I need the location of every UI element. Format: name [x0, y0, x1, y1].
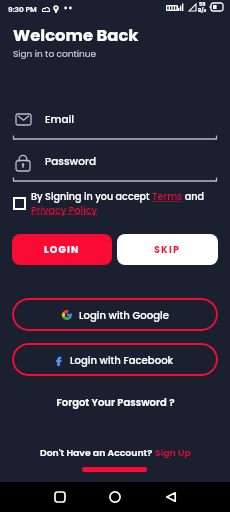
staticText: Don't Have an Account? — [40, 446, 155, 459]
button[interactable]: Home — [90, 482, 140, 512]
button[interactable]: Email — [0, 110, 230, 140]
button[interactable]: SKIP — [117, 234, 218, 265]
staticText: SKIP — [154, 243, 181, 256]
button[interactable]: Login with Google — [12, 298, 218, 331]
staticText: B/s — [198, 7, 207, 14]
staticText: Email — [45, 112, 75, 127]
staticText: By Signing in you accept Terms and Priva… — [31, 190, 211, 216]
staticText: 58 — [199, 1, 206, 8]
staticText: LOGIN — [44, 243, 80, 256]
button[interactable]: Recent apps — [35, 482, 85, 512]
button[interactable]: Accept terms checkbox — [13, 197, 26, 210]
button[interactable]: LOGIN — [12, 234, 112, 265]
button[interactable]: Don't Have an Account? — [0, 444, 230, 460]
button[interactable]: Password — [0, 152, 230, 182]
button[interactable]: Forgot Your Password ? — [0, 394, 230, 410]
staticText: Welcome Back — [13, 24, 139, 47]
staticText: f — [56, 353, 62, 366]
staticText: Sign Up — [155, 446, 191, 459]
button[interactable]: f — [12, 343, 218, 376]
staticText: Password — [45, 154, 97, 169]
staticText: Login with Facebook — [70, 353, 174, 367]
staticText: Forgot Your Password ? — [56, 395, 175, 409]
staticText: Login with Google — [79, 308, 169, 322]
staticText: Sign in to continue — [13, 48, 97, 61]
button[interactable]: Back — [146, 482, 196, 512]
staticText: 9:30 PM — [8, 4, 37, 14]
